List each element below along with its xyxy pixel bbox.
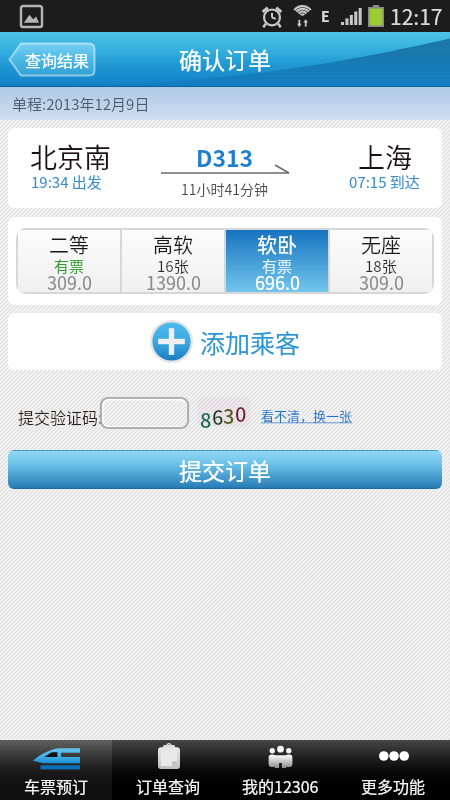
button[interactable]: Captcha input: [101, 398, 188, 428]
staticText: 单程:2013年12月9日: [12, 93, 150, 115]
staticText: 北京南: [30, 137, 111, 176]
staticText: 软卧: [257, 230, 297, 259]
staticText: 07:15 到达: [349, 171, 420, 193]
staticText: 提交订单: [179, 453, 271, 486]
staticText: 309.0: [47, 269, 92, 294]
button[interactable]: 无座: [330, 230, 432, 292]
staticText: 确认订单: [179, 42, 271, 75]
other: Screenshot: [21, 6, 42, 27]
staticText: 1390.0: [146, 269, 201, 294]
staticText: 上海: [358, 137, 412, 176]
staticText: 看不清，换一张: [261, 406, 353, 425]
staticText: 3: [223, 401, 235, 429]
staticText: 高软: [153, 230, 193, 259]
staticText: 添加乘客: [200, 324, 301, 360]
button[interactable]: 看不清，换一张: [261, 406, 353, 425]
staticText: 11小时41分钟: [181, 179, 269, 199]
staticText: 309.0: [359, 269, 404, 294]
staticText: 车票预订: [24, 774, 89, 797]
staticText: 0: [235, 399, 247, 427]
button[interactable]: 我的12306: [224, 740, 337, 800]
staticText: 有票: [262, 255, 293, 277]
button[interactable]: 添加乘客: [8, 313, 442, 370]
staticText: 18张: [365, 255, 397, 277]
staticText: 二等: [49, 230, 89, 259]
staticText: 6: [212, 402, 224, 430]
staticText: 订单查询: [136, 774, 201, 797]
button[interactable]: 更多功能: [337, 740, 450, 800]
staticText: 无座: [361, 230, 401, 259]
staticText: 更多功能: [361, 774, 426, 797]
staticText: 有票: [54, 255, 85, 277]
staticText: 696.0: [255, 269, 300, 294]
staticText: 16张: [157, 255, 189, 277]
button[interactable]: 车票预订: [0, 740, 112, 800]
staticText: 提交验证码:: [18, 405, 103, 428]
staticText: 查询结果: [25, 48, 90, 71]
staticText: E: [321, 6, 330, 26]
button[interactable]: 查询结果: [8, 42, 96, 77]
button[interactable]: 订单查询: [112, 740, 224, 800]
staticText: D313: [196, 140, 254, 173]
staticText: 8: [200, 405, 212, 433]
staticText: 12:17: [390, 1, 443, 31]
button[interactable]: 高软: [122, 230, 224, 292]
button[interactable]: 软卧: [226, 230, 328, 292]
staticText: 19:34 出发: [31, 171, 102, 193]
button[interactable]: 二等: [18, 230, 120, 292]
button[interactable]: 提交订单: [8, 450, 442, 489]
staticText: 我的12306: [242, 774, 319, 797]
